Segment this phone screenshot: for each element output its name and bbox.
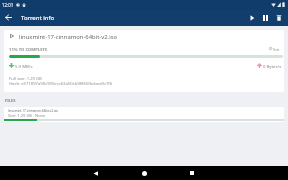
staticText: Full size: 1.29 GB [9, 76, 42, 82]
staticText: Size: 1.29 GB · None [8, 113, 46, 118]
button[interactable]: Delete [271, 10, 287, 26]
staticText: 0 Bytes/s [263, 63, 282, 69]
staticText: linuxmint-17-cinnamon-64bit-v2.iso [8, 109, 58, 113]
staticText: linuxmint-17-cinnamon-64bit-v2.iso [19, 33, 118, 41]
button[interactable]: Play [244, 10, 260, 26]
button[interactable]: Back [83, 166, 107, 180]
button[interactable]: linuxmint-17-cinnamon-64bit-v2.iso [4, 107, 284, 122]
staticText: FILES [5, 98, 16, 103]
button[interactable]: linuxmint-17-cinnamon-64bit-v2.iso [4, 30, 284, 92]
button[interactable]: Pause [257, 10, 273, 26]
staticText: Torrent info [21, 14, 55, 22]
button[interactable]: Recents [180, 166, 204, 180]
staticText: 12:01 [2, 2, 14, 8]
staticText: 5m [273, 47, 280, 53]
staticText: 11% TO COMPLETE [9, 47, 48, 53]
staticText: 5.9 MB/s [15, 63, 33, 69]
button[interactable]: Home [132, 166, 156, 180]
staticText: Hash: e571897a90c905ecc63a50cb98f65fbcbe… [9, 81, 113, 87]
button[interactable]: Back [0, 9, 16, 25]
